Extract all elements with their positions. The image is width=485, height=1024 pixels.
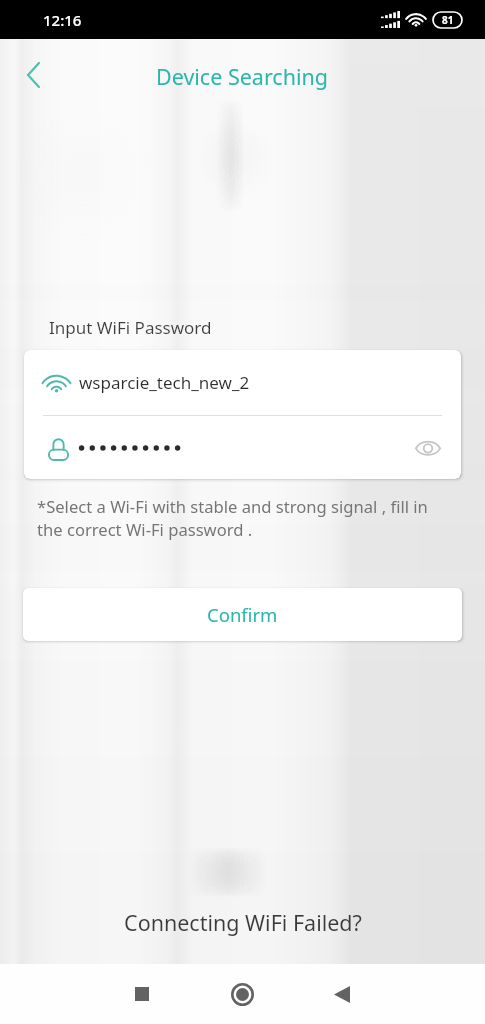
staticText: Confirm [207, 602, 278, 627]
staticText: *Select a Wi-Fi with stable and strong s… [37, 495, 435, 541]
staticText: Connecting WiFi Failed? [124, 908, 362, 937]
staticText: Input WiFi Password [49, 316, 212, 339]
button[interactable]: Confirm [23, 588, 462, 641]
button[interactable]: Back [10, 52, 56, 98]
button[interactable]: Recents [118, 970, 166, 1018]
staticText: 81 [442, 13, 454, 27]
button[interactable]: Connecting WiFi Failed? [114, 900, 372, 944]
button[interactable]: Back [318, 970, 366, 1018]
staticText: Device Searching [156, 62, 329, 91]
button[interactable]: Show password [24, 416, 461, 479]
button[interactable]: Home [218, 970, 266, 1018]
staticText: wsparcie_tech_new_2 [79, 371, 250, 394]
button[interactable]: Show password [405, 425, 451, 471]
button[interactable]: wsparcie_tech_new_2 [24, 350, 461, 415]
staticText: 12:16 [43, 10, 82, 30]
